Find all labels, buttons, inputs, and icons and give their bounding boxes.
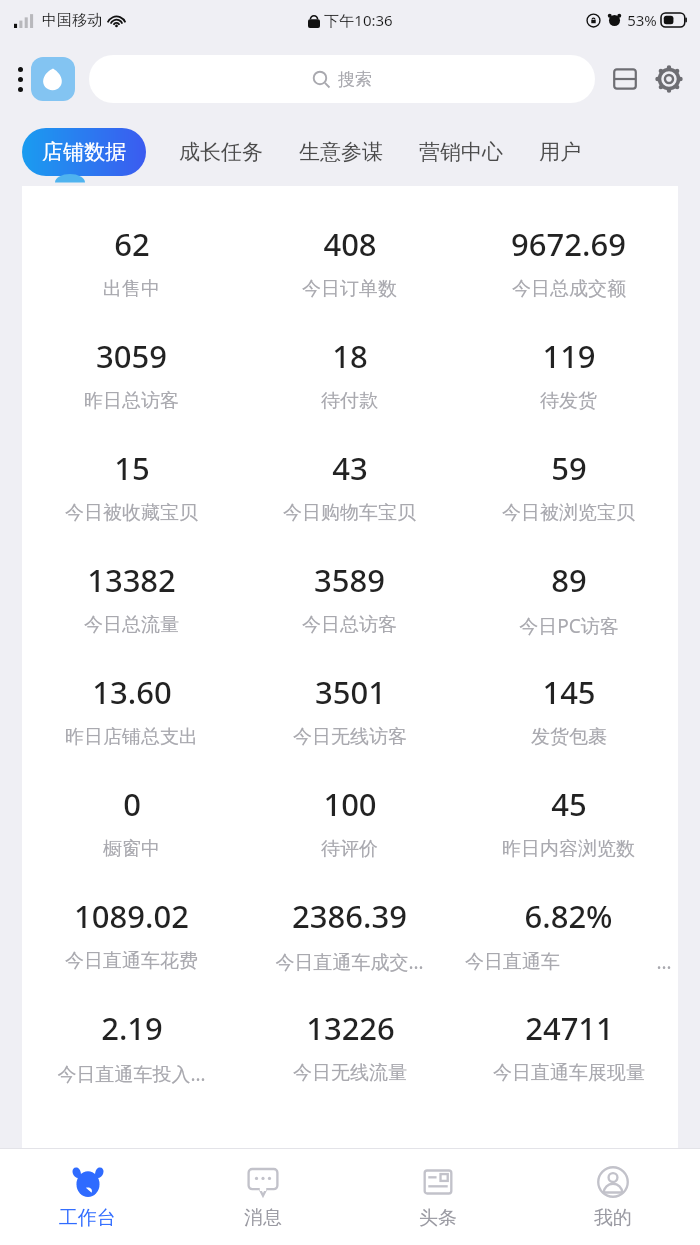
staticText: 13.60 [92,671,172,713]
button[interactable]: 用户 [528,128,592,176]
button[interactable]: 45 [459,771,678,883]
staticText: 我的 [594,1206,632,1230]
staticText: 13226 [306,1007,395,1049]
button[interactable]: 59 [459,435,678,547]
staticText: 89 [551,559,587,601]
button[interactable]: 0 [22,771,240,883]
staticText: 今日直通车花费 [65,949,198,973]
staticText: 今日总流量 [84,613,179,637]
button[interactable]: 15 [22,435,240,547]
staticText: 今日直通车投入… [57,1061,206,1087]
staticText: 今日无线流量 [293,1061,407,1085]
staticText: 今日被浏览宝贝 [502,501,635,525]
staticText: 13382 [87,559,176,601]
staticText: 2386.39 [292,895,407,937]
staticText: 18 [332,335,368,377]
button[interactable]: 145 [459,659,678,771]
staticText: 店铺数据 [42,139,126,165]
button[interactable]: 119 [459,323,678,435]
staticText: 昨日内容浏览数 [502,837,635,861]
button[interactable]: 9672.69 [459,211,678,323]
staticText: 今日直通车成交… [275,949,424,975]
button[interactable]: 消息 [175,1148,350,1245]
staticText: 下午10:36 [324,10,393,30]
staticText: 今日直通车展现量 [493,1061,645,1085]
staticText: 145 [542,671,596,713]
button[interactable]: 2.19 [22,995,240,1107]
button[interactable]: 1089.02 [22,883,240,995]
staticText: 今日PC访客 [519,613,619,639]
staticText: 53% [627,10,657,30]
staticText: 9672.69 [511,223,626,265]
staticText: 头条 [419,1206,457,1230]
button[interactable]: 24711 [459,995,678,1107]
staticText: 3501 [315,671,386,713]
button[interactable]: 3501 [240,659,459,771]
staticText: 今日总成交额 [512,277,626,301]
staticText: 用户 [539,139,581,165]
staticText: 工作台 [59,1206,116,1230]
staticText: 今日购物车宝贝 [283,501,416,525]
button[interactable]: 搜索 [89,55,595,103]
staticText: 今日无线访客 [293,725,407,749]
staticText: 24711 [525,1007,614,1049]
staticText: 中国移动 [42,11,102,30]
button[interactable]: App logo [31,57,75,101]
button[interactable]: 2386.39 [240,883,459,995]
staticText: 消息 [244,1206,282,1230]
staticText: 生意参谋 [299,139,383,165]
button[interactable]: Split screen [608,62,642,96]
staticText: 昨日店铺总支出 [65,725,198,749]
button[interactable]: 头条 [350,1148,525,1245]
button[interactable]: 工作台 [0,1148,175,1245]
staticText: 408 [323,223,377,265]
button[interactable]: Menu [14,67,26,92]
staticText: 营销中心 [419,139,503,165]
button[interactable]: 13226 [240,995,459,1107]
button[interactable]: 营销中心 [408,128,514,176]
staticText: … [656,949,672,975]
staticText: 待发货 [540,389,597,413]
button[interactable]: Settings [652,62,686,96]
button[interactable]: 3589 [240,547,459,659]
button[interactable]: 3059 [22,323,240,435]
button[interactable]: 18 [240,323,459,435]
staticText: 43 [332,447,368,489]
staticText: 昨日总访客 [84,389,179,413]
staticText: 0 [123,783,141,825]
staticText: 2.19 [101,1007,163,1049]
button[interactable]: 89 [459,547,678,659]
button[interactable]: 13.60 [22,659,240,771]
button[interactable]: 6.82% [459,883,678,995]
button[interactable]: 店铺数据 [22,128,146,176]
staticText: 62 [114,223,150,265]
staticText: 3059 [96,335,167,377]
button[interactable]: 408 [240,211,459,323]
staticText: 待付款 [321,389,378,413]
button[interactable]: 62 [22,211,240,323]
staticText: 今日总访客 [302,613,397,637]
staticText: 45 [551,783,587,825]
staticText: 59 [551,447,587,489]
staticText: 1089.02 [74,895,189,937]
staticText: 100 [323,783,377,825]
staticText: 成长任务 [179,139,263,165]
staticText: 今日被收藏宝贝 [65,501,198,525]
staticText: 发货包裹 [531,725,607,749]
staticText: 15 [114,447,150,489]
button[interactable]: 我的 [525,1148,700,1245]
staticText: 橱窗中 [103,837,160,861]
button[interactable]: 100 [240,771,459,883]
staticText: 待评价 [321,837,378,861]
staticText: 3589 [314,559,385,601]
staticText: 6.82% [524,895,613,937]
button[interactable]: 43 [240,435,459,547]
staticText: 出售中 [103,277,160,301]
button[interactable]: 生意参谋 [288,128,394,176]
button[interactable]: 13382 [22,547,240,659]
button[interactable]: 成长任务 [168,128,274,176]
staticText: 119 [542,335,596,377]
staticText: 今日直通车 [465,950,560,974]
staticText: 搜索 [338,69,372,90]
staticText: 今日订单数 [302,277,397,301]
